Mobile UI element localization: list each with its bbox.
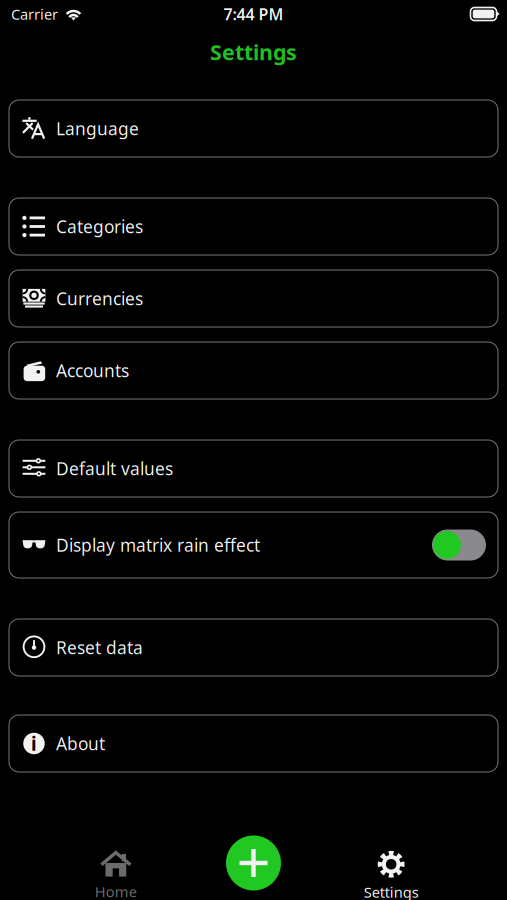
staticText: Categories (56, 215, 143, 238)
button[interactable]: Default values (9, 440, 498, 497)
staticText: Language (56, 117, 139, 140)
staticText: About (56, 732, 105, 755)
staticText: Accounts (56, 359, 129, 382)
staticText: Reset data (56, 636, 143, 659)
staticText: Settings (364, 882, 419, 900)
staticText: Settings (210, 38, 297, 66)
button[interactable]: Display matrix rain effect (9, 512, 498, 578)
button[interactable]: Currencies (9, 270, 498, 327)
button[interactable]: Accounts (9, 342, 498, 399)
button[interactable]: Reset data (9, 619, 498, 676)
button[interactable]: Add (185, 845, 322, 899)
staticText: Currencies (56, 287, 143, 310)
button[interactable]: i (9, 715, 498, 772)
button[interactable]: Home (47, 845, 185, 899)
button[interactable]: Language (9, 100, 498, 157)
staticText: Carrier (11, 4, 58, 24)
button[interactable]: Categories (9, 198, 498, 255)
staticText: Default values (56, 457, 173, 480)
staticText: 7:44 PM (223, 3, 283, 25)
staticText: Home (95, 882, 137, 900)
staticText: Display matrix rain effect (56, 533, 260, 556)
button[interactable]: Settings (322, 845, 460, 899)
staticText: i (31, 731, 37, 756)
